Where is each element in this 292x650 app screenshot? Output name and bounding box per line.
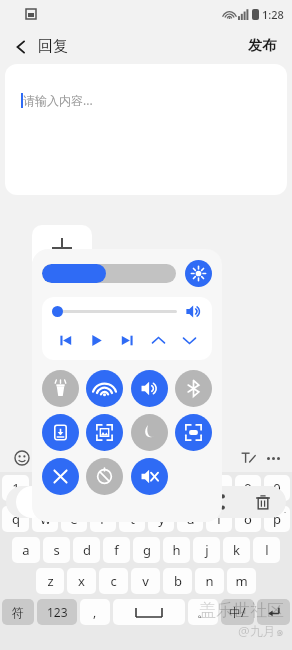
button[interactable]: 回复 <box>10 33 72 60</box>
button[interactable]: 中/ <box>221 599 254 625</box>
button[interactable]: Share <box>205 489 231 515</box>
button[interactable]: Space <box>113 599 185 625</box>
button[interactable]: Previous <box>52 327 78 353</box>
staticText: u <box>186 510 195 528</box>
button[interactable]: Save <box>42 414 79 451</box>
button[interactable]: v <box>131 568 160 594</box>
button[interactable]: Up <box>145 327 171 353</box>
button[interactable]: h <box>163 537 190 563</box>
button[interactable]: Scan <box>69 489 95 515</box>
button[interactable]: w <box>32 506 58 532</box>
button[interactable]: Wi-Fi <box>86 370 123 407</box>
button[interactable]: Brightness slider <box>42 264 176 283</box>
staticText: y <box>158 510 165 528</box>
button[interactable]: c <box>99 568 128 594</box>
button[interactable]: m <box>227 568 256 594</box>
button[interactable]: 8 <box>206 475 232 501</box>
button[interactable]: Edit <box>114 489 140 515</box>
button[interactable]: Screenshot <box>86 414 123 451</box>
staticText: o <box>244 510 252 528</box>
button[interactable]: 123 <box>37 599 77 625</box>
button[interactable]: z <box>36 568 64 594</box>
staticText: a <box>22 541 30 559</box>
button[interactable]: u <box>177 506 203 532</box>
button[interactable]: Volume slider <box>52 306 177 317</box>
button[interactable]: Next <box>114 327 140 353</box>
button[interactable]: 3 <box>61 475 87 501</box>
button[interactable]: 4 <box>90 475 116 501</box>
staticText: @九月๑ <box>238 621 284 642</box>
button[interactable]: x <box>67 568 96 594</box>
button[interactable]: l <box>253 537 280 563</box>
button[interactable]: r <box>90 506 116 532</box>
staticText: 2 <box>41 479 49 497</box>
button[interactable]: j <box>193 537 220 563</box>
button[interactable]: Voice <box>16 486 50 518</box>
staticText: 4 <box>99 479 107 497</box>
button[interactable]: y <box>148 506 174 532</box>
staticText: 6 <box>157 479 165 497</box>
button[interactable]: Sound <box>131 370 168 407</box>
button[interactable]: Do not disturb <box>131 414 168 451</box>
button[interactable]: k <box>223 537 250 563</box>
staticText: q <box>12 510 20 528</box>
button[interactable]: More <box>267 457 280 460</box>
button[interactable]: 1 <box>2 475 29 501</box>
button[interactable]: Mute <box>131 458 168 495</box>
staticText: 5 <box>128 479 136 497</box>
staticText: x <box>78 572 85 590</box>
staticText: c <box>110 572 117 590</box>
staticText: i <box>217 510 221 528</box>
staticText: z <box>47 572 54 590</box>
button[interactable]: 请输入内容... <box>5 64 287 195</box>
button[interactable]: d <box>73 537 100 563</box>
staticText: s <box>53 541 60 559</box>
button[interactable]: Screen record <box>175 414 212 451</box>
button[interactable]: g <box>133 537 160 563</box>
button[interactable]: i <box>206 506 232 532</box>
button[interactable]: Close <box>42 458 79 495</box>
button[interactable]: o <box>235 506 261 532</box>
button[interactable]: Handwriting <box>240 450 256 466</box>
staticText: ? <box>22 507 26 517</box>
button[interactable]: 5 <box>119 475 145 501</box>
staticText: 盖乐世社区 <box>199 600 284 621</box>
staticText: 123 <box>47 604 68 620</box>
button[interactable]: Volume <box>185 303 202 320</box>
button[interactable]: Tag <box>160 489 186 515</box>
staticText: 中/ <box>229 604 246 620</box>
staticText: d <box>83 541 91 559</box>
button[interactable]: Play <box>83 327 109 353</box>
button[interactable]: 2 <box>32 475 58 501</box>
button[interactable]: 6 <box>148 475 174 501</box>
button[interactable]: b <box>163 568 192 594</box>
button[interactable]: 符 <box>2 599 34 625</box>
button[interactable]: a <box>12 537 40 563</box>
button[interactable]: Brightness <box>185 260 212 287</box>
button[interactable]: Bluetooth <box>175 370 212 407</box>
button[interactable]: s <box>43 537 70 563</box>
button[interactable]: f <box>103 537 130 563</box>
button[interactable]: Emoji <box>14 450 30 466</box>
button[interactable]: Flashlight <box>42 370 79 407</box>
button[interactable]: Add attachment <box>32 225 92 271</box>
button[interactable]: Rotate <box>86 458 123 495</box>
staticText: g <box>143 541 151 559</box>
staticText: b <box>174 572 182 590</box>
button[interactable]: q <box>2 506 29 532</box>
button[interactable]: 0 <box>264 475 290 501</box>
staticText: - <box>284 507 287 517</box>
button[interactable]: n <box>195 568 224 594</box>
button[interactable]: 9 <box>235 475 261 501</box>
staticText: 发布 <box>248 37 276 55</box>
button[interactable]: t <box>119 506 145 532</box>
button[interactable]: , <box>80 599 110 625</box>
button[interactable]: e <box>61 506 87 532</box>
button[interactable]: 发布 <box>244 33 280 59</box>
button[interactable]: p <box>264 506 290 532</box>
button[interactable]: Delete <box>250 489 276 515</box>
button[interactable]: 。 <box>188 599 218 625</box>
button[interactable]: Down <box>176 327 202 353</box>
button[interactable]: Enter <box>257 599 290 625</box>
